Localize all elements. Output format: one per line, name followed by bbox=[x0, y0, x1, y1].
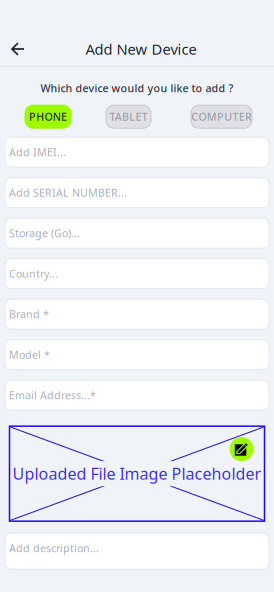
button[interactable]: Edit image bbox=[229, 437, 253, 461]
button[interactable]: PHONE bbox=[25, 105, 71, 128]
button[interactable]: Back bbox=[0, 32, 36, 66]
staticText: Add New Device bbox=[85, 39, 196, 59]
button[interactable]: TABLET bbox=[106, 105, 151, 128]
staticText: Which device would you like to add ? bbox=[40, 81, 233, 95]
staticText: Email Address...* bbox=[9, 388, 96, 402]
staticText: Uploaded File Image Placeholder bbox=[12, 463, 261, 484]
staticText: Brand * bbox=[9, 307, 49, 321]
button[interactable]: Add IMEI... bbox=[5, 137, 269, 167]
button[interactable]: Model * bbox=[5, 340, 269, 370]
staticText: Add description... bbox=[9, 541, 99, 555]
staticText: Add IMEI... bbox=[9, 145, 66, 159]
staticText: Add SERIAL NUMBER... bbox=[9, 186, 127, 200]
staticText: Model * bbox=[9, 348, 50, 362]
staticText: Storage (Go)... bbox=[9, 226, 80, 240]
button[interactable]: Email Address...* bbox=[5, 380, 269, 410]
staticText: Country... bbox=[9, 267, 58, 281]
button[interactable]: Country... bbox=[5, 259, 269, 289]
staticText: PHONE bbox=[29, 110, 67, 124]
button[interactable]: Add description... bbox=[5, 533, 269, 569]
staticText: TABLET bbox=[109, 110, 148, 124]
button[interactable]: COMPUTER bbox=[191, 105, 252, 128]
button[interactable]: Storage (Go)... bbox=[5, 218, 269, 248]
button[interactable]: Add SERIAL NUMBER... bbox=[5, 178, 269, 208]
staticText: COMPUTER bbox=[191, 110, 252, 124]
button[interactable]: Brand * bbox=[5, 299, 269, 329]
